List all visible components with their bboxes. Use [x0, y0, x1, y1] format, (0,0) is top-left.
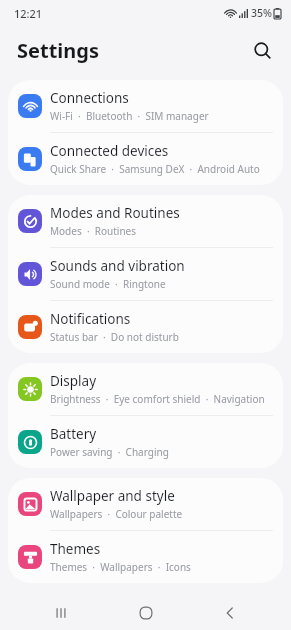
button[interactable]: Sounds and vibration — [8, 248, 283, 300]
staticText: Settings — [17, 37, 99, 64]
staticText: Sounds and vibration — [50, 257, 185, 275]
staticText: Sound mode · Ringtone — [50, 277, 166, 291]
button[interactable]: Connected devices — [8, 133, 283, 185]
staticText: Notifications — [50, 310, 131, 328]
button[interactable]: Recents — [38, 596, 84, 630]
staticText: Themes — [50, 540, 101, 558]
staticText: Connections — [50, 89, 129, 107]
staticText: Connected devices — [50, 142, 169, 160]
staticText: Status bar · Do not disturb — [50, 330, 179, 344]
staticText: Quick Share · Samsung DeX · Android Auto — [50, 162, 260, 176]
button[interactable]: Connections — [8, 80, 283, 132]
staticText: Wallpaper and style — [50, 487, 175, 505]
staticText: Modes and Routines — [50, 204, 180, 222]
button[interactable]: Display — [8, 363, 283, 415]
staticText: 12:21 — [14, 6, 43, 21]
staticText: Themes · Wallpapers · Icons — [50, 560, 191, 574]
staticText: Wi-Fi · Bluetooth · SIM manager — [50, 109, 209, 123]
button[interactable]: Themes — [8, 531, 283, 583]
staticText: 35% — [251, 6, 272, 20]
button[interactable]: Home — [123, 596, 169, 630]
button[interactable]: Search — [245, 33, 279, 67]
staticText: Display — [50, 372, 97, 390]
staticText: Wallpapers · Colour palette — [50, 507, 183, 521]
staticText: Battery — [50, 425, 97, 443]
button[interactable]: Battery — [8, 416, 283, 468]
staticText: Modes · Routines — [50, 224, 137, 238]
button[interactable]: Wallpaper and style — [8, 478, 283, 530]
button[interactable]: Back — [207, 596, 253, 630]
staticText: Power saving · Charging — [50, 445, 169, 459]
button[interactable]: Notifications — [8, 301, 283, 353]
button[interactable]: Modes and Routines — [8, 195, 283, 247]
staticText: Brightness · Eye comfort shield · Naviga… — [50, 392, 273, 406]
